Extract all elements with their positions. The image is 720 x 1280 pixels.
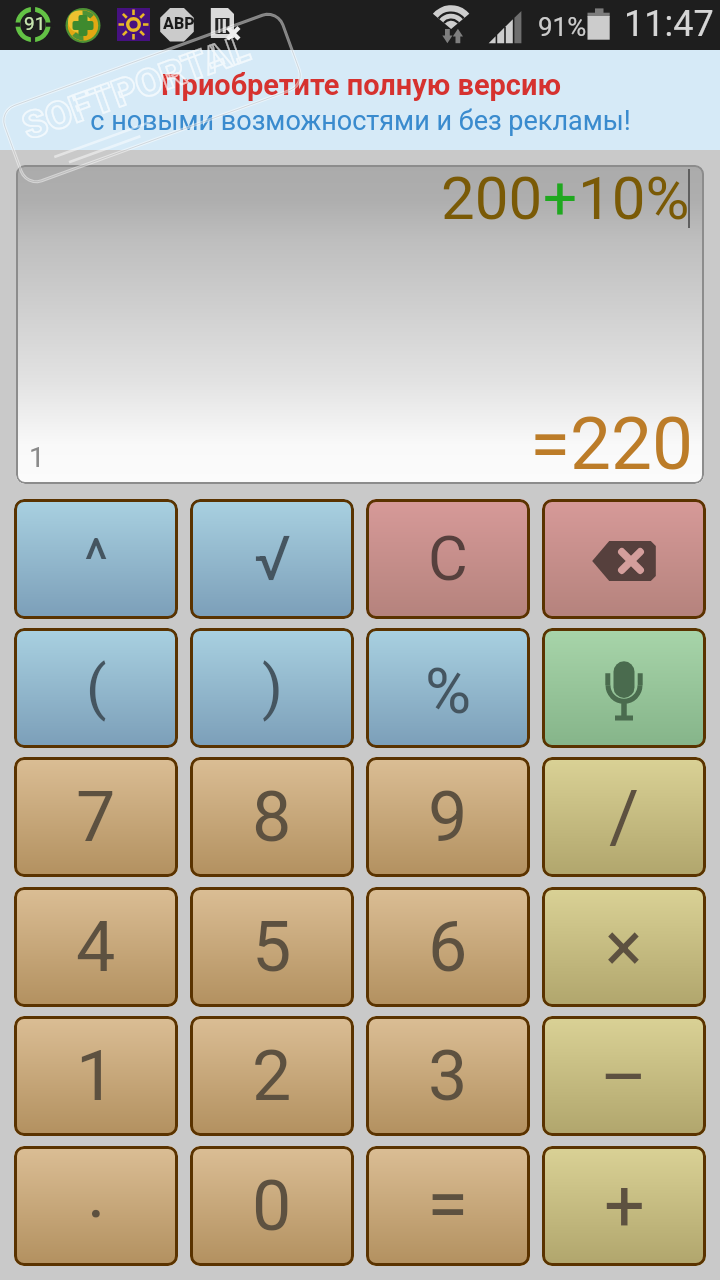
button[interactable]: Voice input bbox=[542, 628, 706, 748]
button[interactable]: Приобретите полную версию bbox=[0, 50, 720, 150]
staticText: 3 bbox=[428, 1035, 468, 1117]
staticText: 2 bbox=[252, 1035, 292, 1117]
staticText: + bbox=[604, 1163, 645, 1247]
staticText: Приобретите полную версию bbox=[161, 68, 561, 102]
staticText: × bbox=[605, 906, 643, 988]
staticText: 91% bbox=[538, 12, 587, 42]
button[interactable]: C bbox=[366, 499, 530, 619]
staticText: 6 bbox=[428, 906, 468, 988]
button[interactable]: × bbox=[542, 887, 706, 1007]
staticText: = bbox=[427, 1159, 469, 1247]
staticText: SOFTPORTAL bbox=[16, 26, 256, 150]
staticText: ( bbox=[86, 652, 107, 722]
button[interactable]: . bbox=[14, 1146, 178, 1266]
staticText: с новыми возможностями и без рекламы! bbox=[90, 105, 631, 137]
button[interactable]: 0 bbox=[190, 1146, 354, 1266]
button[interactable]: + bbox=[542, 1146, 706, 1266]
staticText: 9 bbox=[428, 776, 468, 858]
button[interactable]: ^ bbox=[14, 499, 178, 619]
button[interactable]: ( bbox=[14, 628, 178, 748]
staticText: + bbox=[543, 165, 578, 233]
staticText: ^ bbox=[84, 526, 109, 594]
staticText: 4 bbox=[76, 906, 116, 988]
staticText: √ bbox=[254, 522, 291, 595]
staticText: – bbox=[600, 1035, 648, 1119]
button[interactable]: 1 bbox=[14, 1016, 178, 1136]
button[interactable]: 8 bbox=[190, 757, 354, 877]
staticText: . bbox=[87, 1152, 106, 1234]
button[interactable]: 7 bbox=[14, 757, 178, 877]
staticText: 0 bbox=[252, 1165, 292, 1247]
staticText: 10% bbox=[578, 165, 690, 233]
staticText: 8 bbox=[252, 776, 292, 858]
button[interactable]: 4 bbox=[14, 887, 178, 1007]
button[interactable]: Backspace bbox=[542, 499, 706, 619]
button[interactable]: ) bbox=[190, 628, 354, 748]
button[interactable]: % bbox=[366, 628, 530, 748]
staticText: ) bbox=[262, 652, 283, 722]
staticText: % bbox=[425, 655, 472, 729]
button[interactable]: √ bbox=[190, 499, 354, 619]
button[interactable]: 5 bbox=[190, 887, 354, 1007]
staticText: 5 bbox=[252, 906, 292, 988]
staticText: 7 bbox=[76, 776, 116, 858]
staticText: / bbox=[609, 774, 640, 860]
button[interactable]: 6 bbox=[366, 887, 530, 1007]
button[interactable]: / bbox=[542, 757, 706, 877]
button[interactable]: 2 bbox=[190, 1016, 354, 1136]
staticText: =220 bbox=[530, 401, 694, 484]
button[interactable]: 3 bbox=[366, 1016, 530, 1136]
button[interactable]: – bbox=[542, 1016, 706, 1136]
staticText: C bbox=[428, 523, 468, 594]
button[interactable]: 200 bbox=[16, 165, 704, 484]
staticText: 91 bbox=[24, 12, 46, 34]
staticText: 11:47 bbox=[624, 3, 714, 45]
button[interactable]: = bbox=[366, 1146, 530, 1266]
staticText: 1 bbox=[76, 1035, 116, 1117]
staticText: 1 bbox=[29, 441, 45, 474]
staticText: ABP bbox=[163, 14, 195, 33]
staticText: 200 bbox=[441, 165, 543, 233]
button[interactable]: 9 bbox=[366, 757, 530, 877]
